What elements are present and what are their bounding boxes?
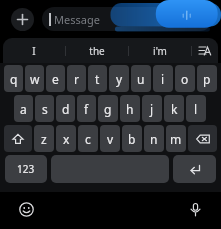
button[interactable]: x <box>56 125 76 152</box>
button[interactable]: Add attachment <box>11 8 34 31</box>
button[interactable]: j <box>142 95 162 122</box>
button[interactable]: Enter <box>173 155 216 183</box>
button[interactable]: f <box>77 95 96 122</box>
staticText: j <box>150 101 154 117</box>
button[interactable]: 123 <box>5 155 47 183</box>
staticText: y <box>116 71 123 87</box>
button[interactable]: y <box>109 65 129 92</box>
staticText: t <box>95 71 100 87</box>
staticText: k <box>171 101 178 117</box>
button[interactable]: I <box>3 38 65 63</box>
button[interactable]: Space <box>51 155 169 183</box>
button[interactable]: d <box>56 95 75 122</box>
staticText: m <box>170 131 182 147</box>
staticText: p <box>203 71 211 87</box>
staticText: s <box>42 101 48 117</box>
staticText: h <box>126 101 134 117</box>
button[interactable]: q <box>4 65 23 92</box>
button[interactable]: Voice input <box>183 197 207 221</box>
staticText: u <box>137 71 145 87</box>
button[interactable]: a <box>14 95 33 122</box>
button[interactable]: v <box>100 125 120 152</box>
staticText: x <box>63 131 70 147</box>
button[interactable]: Text editing tools <box>192 38 218 63</box>
staticText: i <box>161 71 165 87</box>
staticText: o <box>181 71 189 87</box>
button[interactable]: Shift <box>4 125 32 152</box>
staticText: q <box>10 71 18 87</box>
staticText: l <box>194 101 198 117</box>
button[interactable]: w <box>25 65 44 92</box>
button[interactable]: g <box>98 95 118 122</box>
staticText: 123 <box>17 162 35 176</box>
button[interactable]: o <box>175 65 195 92</box>
button[interactable]: b <box>122 125 142 152</box>
button[interactable]: i <box>153 65 173 92</box>
button[interactable]: the <box>66 38 128 63</box>
staticText: g <box>104 101 112 117</box>
button[interactable]: t <box>88 65 107 92</box>
button[interactable]: Emoji <box>14 197 38 221</box>
staticText: b <box>128 131 136 147</box>
staticText: v <box>107 131 114 147</box>
button[interactable]: l <box>186 95 206 122</box>
staticText: z <box>41 131 47 147</box>
button[interactable]: u <box>131 65 151 92</box>
button[interactable]: n <box>144 125 164 152</box>
button[interactable]: e <box>46 65 65 92</box>
staticText: the <box>89 44 105 58</box>
staticText: i'm <box>153 44 167 58</box>
button[interactable]: c <box>78 125 98 152</box>
button[interactable]: i'm <box>129 38 191 63</box>
button[interactable]: s <box>35 95 54 122</box>
button[interactable]: k <box>164 95 184 122</box>
staticText: n <box>150 131 158 147</box>
staticText: d <box>62 101 70 117</box>
staticText: I <box>32 44 36 58</box>
button[interactable]: Message <box>42 7 212 31</box>
button[interactable]: z <box>34 125 54 152</box>
staticText: Message <box>54 12 100 27</box>
staticText: c <box>85 131 91 147</box>
staticText: f <box>84 101 89 117</box>
button[interactable]: p <box>197 65 217 92</box>
button[interactable]: h <box>120 95 140 122</box>
staticText: e <box>52 71 59 87</box>
staticText: r <box>74 71 79 87</box>
staticText: a <box>20 101 27 117</box>
button[interactable]: r <box>67 65 86 92</box>
staticText: w <box>30 71 40 87</box>
button[interactable]: m <box>166 125 186 152</box>
button[interactable]: Backspace <box>188 125 217 152</box>
